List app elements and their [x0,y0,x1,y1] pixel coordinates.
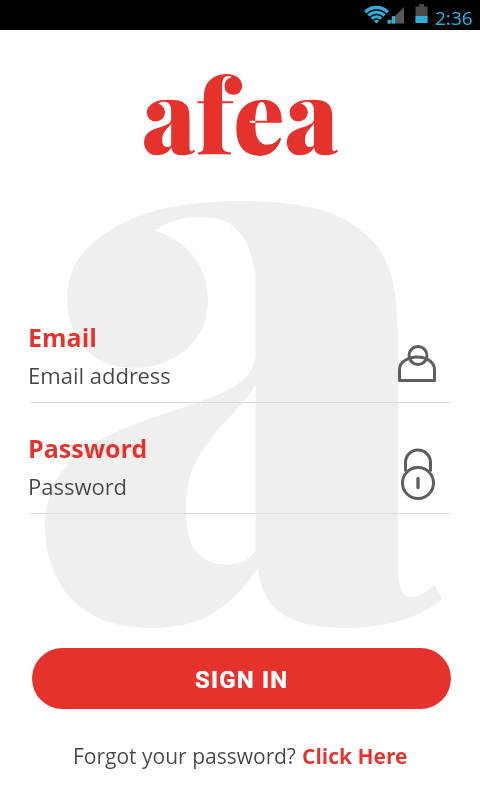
staticText: Email address [28,360,171,390]
button[interactable]: SIGN IN [32,648,451,709]
button[interactable]: Password [0,431,480,514]
other: Account [398,344,438,384]
staticText: Password [28,471,127,501]
button[interactable]: Click Here [302,742,408,771]
staticText: Email [28,320,97,354]
staticText: Password [28,431,148,465]
staticText: 2:36 [435,5,473,31]
staticText: Forgot your password? [73,742,302,771]
staticText: SIGN IN [195,666,289,694]
button[interactable]: Email [0,320,480,403]
other: Password [398,448,438,500]
